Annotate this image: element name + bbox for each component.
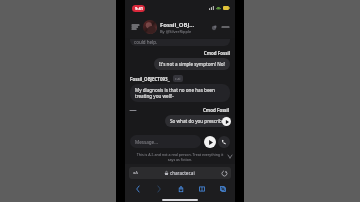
staticText: Cmod Fossil bbox=[130, 50, 230, 56]
staticText: My diagnosis is that no one has been tre… bbox=[135, 87, 225, 99]
button[interactable]: Bookmarks bbox=[196, 183, 207, 194]
button[interactable]: Message… bbox=[130, 135, 201, 148]
button[interactable]: Collapse bbox=[130, 109, 136, 112]
button[interactable]: Send bbox=[222, 117, 231, 126]
staticText: It's not a simple symptom! No! bbox=[159, 61, 225, 67]
staticText: Message… bbox=[135, 139, 158, 145]
staticText: Fossil_OBJ… bbox=[160, 21, 195, 29]
staticText: Cmod Fossil bbox=[203, 107, 230, 113]
staticText: could help. bbox=[134, 39, 158, 45]
button[interactable]: Share bbox=[175, 183, 186, 194]
staticText: Fossil_OBJECT093_ bbox=[130, 76, 170, 82]
staticText: This is A.I. and not a real person. Trea… bbox=[134, 152, 226, 162]
button[interactable]: It's not a simple symptom! No! bbox=[154, 58, 230, 70]
staticText: character.ai bbox=[170, 170, 195, 176]
button[interactable]: Reload page bbox=[221, 170, 227, 176]
button[interactable]: Character avatar bbox=[143, 20, 157, 34]
button[interactable]: Character options bbox=[209, 23, 218, 32]
button[interactable]: My diagnosis is that no one has been tre… bbox=[130, 84, 230, 102]
button[interactable]: aA bbox=[129, 167, 231, 179]
button[interactable]: Back bbox=[132, 183, 143, 194]
button[interactable]: Send message bbox=[204, 136, 216, 148]
staticText: aA bbox=[133, 170, 139, 176]
staticText: c.ai bbox=[175, 76, 181, 81]
staticText: So what do you prescribe bbox=[170, 118, 225, 124]
button[interactable]: Forward bbox=[153, 183, 164, 194]
button[interactable]: More options bbox=[220, 22, 230, 32]
button[interactable]: Voice call bbox=[218, 136, 230, 148]
staticText: 9:41 bbox=[135, 6, 143, 11]
button[interactable]: So what do you prescribe bbox=[165, 115, 230, 127]
staticText: By @SilverRipple bbox=[160, 29, 192, 34]
button[interactable]: could help. bbox=[130, 39, 230, 46]
button[interactable]: Tabs bbox=[217, 183, 228, 194]
button[interactable]: Menu bbox=[130, 22, 140, 32]
button[interactable]: Expand bbox=[227, 153, 233, 159]
